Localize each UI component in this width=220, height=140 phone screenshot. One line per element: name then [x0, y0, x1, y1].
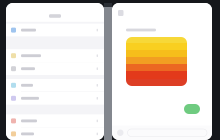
button[interactable]	[6, 24, 104, 36]
button[interactable]	[6, 49, 104, 62]
button[interactable]	[6, 62, 104, 75]
button[interactable]	[6, 92, 104, 105]
button[interactable]: Back	[118, 10, 123, 16]
button[interactable]: Add attachment	[117, 129, 123, 136]
button[interactable]	[6, 115, 104, 127]
button[interactable]	[6, 128, 104, 140]
button[interactable]	[6, 79, 104, 92]
